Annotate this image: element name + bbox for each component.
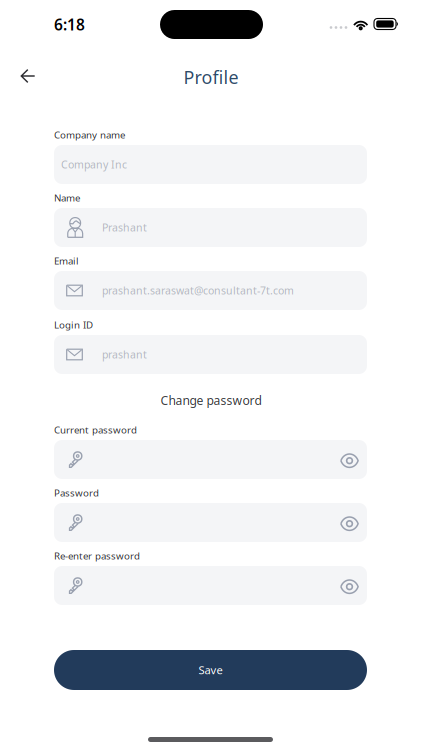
staticText: prashant	[102, 347, 147, 362]
staticText: Company Inc	[61, 157, 127, 172]
staticText: Prashant	[102, 220, 147, 235]
button[interactable]: Back	[6, 54, 50, 98]
staticText: Change password	[160, 392, 261, 408]
staticText: Name	[54, 191, 80, 204]
staticText: Password	[54, 486, 99, 499]
button[interactable]: Show Password	[332, 503, 367, 542]
staticText: Email	[54, 254, 79, 267]
staticText: Company name	[54, 128, 125, 141]
staticText: Re-enter password	[54, 549, 140, 562]
button[interactable]: Show Re-enter password	[332, 566, 367, 605]
button[interactable]: Save	[54, 650, 367, 690]
button[interactable]: Show Current password	[332, 440, 367, 479]
staticText: Login ID	[54, 318, 93, 331]
staticText: Current password	[54, 423, 137, 436]
staticText: prashant.saraswat@consultant-7t.com	[102, 283, 294, 298]
staticText: Profile	[183, 65, 238, 89]
staticText: Save	[198, 662, 222, 678]
staticText: 6:18	[54, 14, 85, 35]
